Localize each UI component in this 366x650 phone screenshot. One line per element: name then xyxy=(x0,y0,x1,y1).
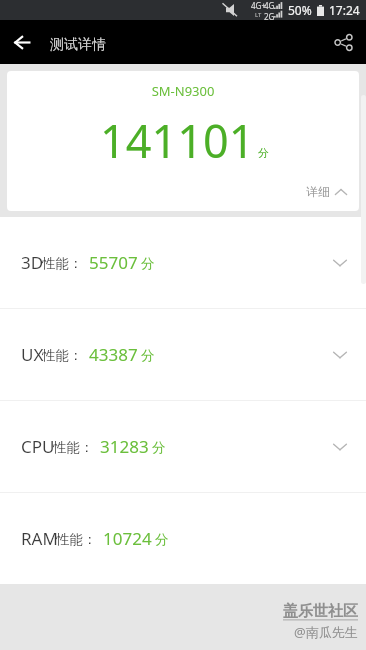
staticText: 55707 xyxy=(89,251,138,274)
button[interactable]: 3D xyxy=(0,217,366,308)
staticText: 分 xyxy=(152,439,166,456)
staticText: ： xyxy=(69,255,83,272)
staticText: ： xyxy=(83,531,97,548)
staticText: 17:24 xyxy=(329,2,360,18)
button[interactable]: UX xyxy=(0,309,366,400)
staticText: 详细 xyxy=(306,184,330,199)
button[interactable]: CPU xyxy=(0,401,366,492)
staticText: 2G xyxy=(264,11,275,20)
staticText: 分 xyxy=(141,347,155,364)
staticText: 4G+ xyxy=(251,0,266,11)
staticText: 分 xyxy=(155,531,169,548)
staticText: SM-N9300 xyxy=(7,82,359,100)
staticText: 31283 xyxy=(100,435,149,458)
staticText: RAM xyxy=(21,527,58,550)
staticText: 性能 xyxy=(56,531,83,548)
staticText: 分 xyxy=(258,146,269,160)
button[interactable]: Back xyxy=(0,20,44,64)
staticText: 3D xyxy=(21,251,44,274)
staticText: @南瓜先生 xyxy=(294,623,358,641)
staticText: 10724 xyxy=(103,527,152,550)
staticText: ： xyxy=(69,347,83,364)
staticText: 4G xyxy=(264,0,275,11)
staticText: 141101 xyxy=(100,110,255,171)
staticText: 43387 xyxy=(89,343,138,366)
button[interactable]: Share xyxy=(322,20,366,64)
staticText: 盖乐世社区 xyxy=(283,602,358,621)
button[interactable]: RAM xyxy=(0,493,366,584)
staticText: 50% xyxy=(288,2,312,18)
staticText: 分 xyxy=(141,255,155,272)
staticText: 测试详情 xyxy=(50,36,106,54)
staticText: UX xyxy=(21,343,44,366)
staticText: LT xyxy=(255,11,262,19)
staticText: CPU xyxy=(21,435,55,458)
staticText: 性能 xyxy=(42,347,69,364)
button[interactable]: 详细 xyxy=(306,184,348,199)
staticText: ： xyxy=(80,439,94,456)
staticText: 性能 xyxy=(53,439,80,456)
staticText: 性能 xyxy=(42,255,69,272)
